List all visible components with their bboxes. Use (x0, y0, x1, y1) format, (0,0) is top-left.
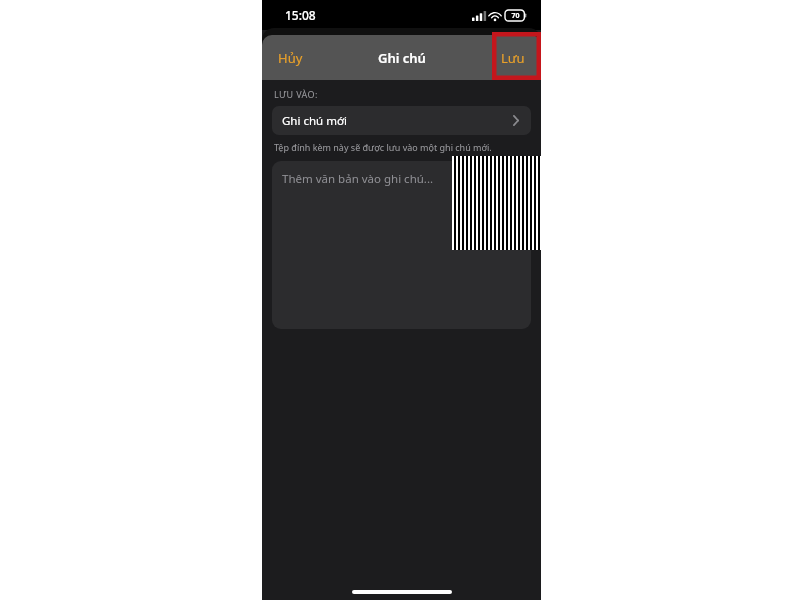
staticText: LƯU VÀO: (274, 88, 318, 100)
staticText: Hủy (278, 49, 303, 67)
staticText: 15:08 (285, 7, 316, 23)
staticText: Ghi chú mới (282, 113, 347, 129)
staticText: Lưu (501, 49, 525, 67)
button[interactable]: Thêm văn bản vào ghi chú... (272, 161, 531, 329)
button[interactable]: Lưu (485, 35, 541, 80)
button[interactable]: Ghi chú mới (272, 106, 531, 135)
staticText: 70 (511, 11, 520, 21)
staticText: Ghi chú (378, 49, 426, 67)
staticText: Tệp đính kèm này sẽ được lưu vào một ghi… (274, 141, 492, 153)
button[interactable]: Hủy (262, 35, 318, 80)
staticText: Thêm văn bản vào ghi chú... (282, 171, 434, 187)
